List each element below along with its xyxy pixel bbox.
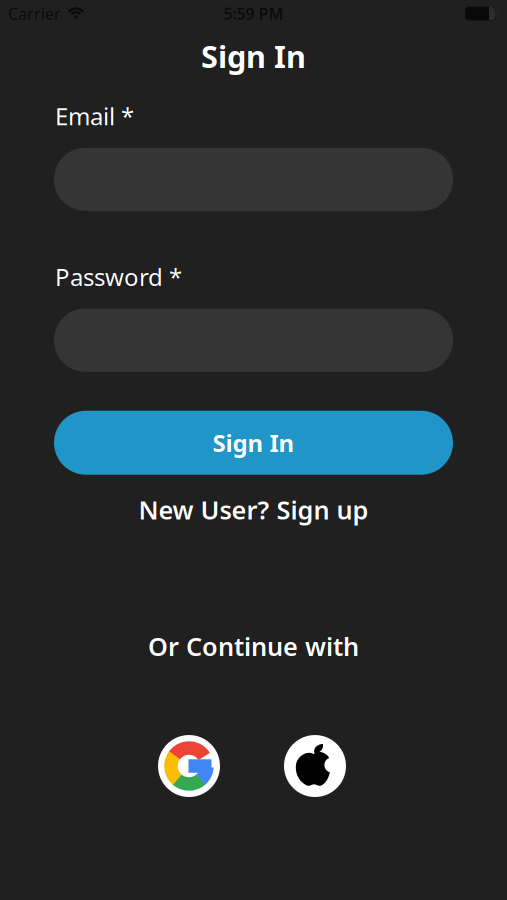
staticText: Carrier bbox=[8, 3, 61, 24]
staticText: Email * bbox=[55, 100, 134, 132]
staticText: New User? Sign up bbox=[138, 493, 368, 526]
button[interactable]: Email bbox=[0, 148, 507, 211]
button[interactable]: Password bbox=[0, 309, 507, 372]
staticText: Or Continue with bbox=[148, 629, 359, 663]
staticText: Password * bbox=[55, 261, 182, 293]
button[interactable]: Sign In bbox=[0, 411, 507, 475]
button[interactable]: Continue with Apple bbox=[284, 735, 346, 797]
button[interactable]: Continue with Google bbox=[158, 735, 220, 797]
staticText: Sign In bbox=[212, 427, 294, 459]
staticText: Sign In bbox=[201, 36, 306, 76]
staticText: 5:59 PM bbox=[223, 3, 283, 24]
button[interactable]: New User? Sign up bbox=[138, 493, 368, 526]
